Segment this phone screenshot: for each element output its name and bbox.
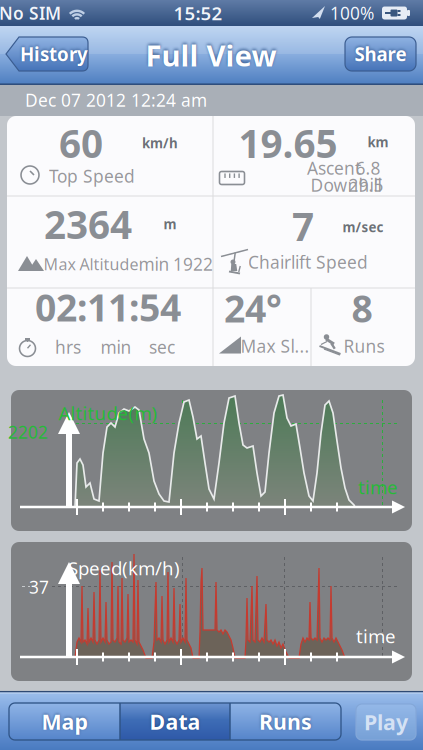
staticText: Speed(km/h) <box>68 556 180 580</box>
staticText: Runs <box>343 334 384 357</box>
button[interactable]: Play <box>356 704 416 740</box>
staticText: Map <box>41 707 87 736</box>
staticText: m <box>163 215 176 233</box>
staticText: 19.65 <box>238 117 337 169</box>
staticText: 15:52 <box>173 1 222 25</box>
staticText: sec <box>149 335 175 358</box>
button[interactable]: Map <box>9 703 119 740</box>
staticText: 6.8 <box>355 156 380 179</box>
staticText: time <box>356 624 396 648</box>
staticText: Full View <box>145 35 276 74</box>
staticText: Chairlift Speed <box>248 250 368 273</box>
staticText: Runs <box>259 707 312 736</box>
staticText: 2364 <box>44 198 132 250</box>
staticText: History <box>20 42 88 66</box>
staticText: km <box>367 133 388 151</box>
staticText: hrs <box>55 335 81 358</box>
button[interactable]: History <box>6 37 88 71</box>
staticText: min <box>138 252 169 275</box>
staticText: Max Sl... <box>240 334 309 357</box>
staticText: No SIM <box>0 1 61 24</box>
staticText: 24° <box>224 283 282 333</box>
staticText: Dec 07 2012 12:24 am <box>25 88 207 111</box>
staticText: 8 <box>351 283 372 333</box>
button[interactable]: Runs <box>230 703 340 740</box>
staticText: Ascent <box>307 156 361 179</box>
staticText: 60 <box>59 117 103 169</box>
staticText: 37 <box>29 575 49 598</box>
staticText: time <box>358 475 398 499</box>
staticText: 2202 <box>8 420 48 443</box>
staticText: Data <box>149 707 200 736</box>
staticText: Downhill <box>310 173 381 196</box>
staticText: km/h <box>142 134 178 152</box>
staticText: Share <box>354 42 406 66</box>
staticText: 1922 <box>173 252 213 275</box>
staticText: Altitude(m) <box>58 401 157 425</box>
staticText: Play <box>364 708 408 736</box>
staticText: 02:11:54 <box>35 282 181 332</box>
staticText: Top Speed <box>49 164 135 187</box>
staticText: Max Altitude <box>43 253 138 275</box>
staticText: min <box>100 335 131 358</box>
button[interactable]: Data <box>120 703 230 740</box>
staticText: 29.5 <box>348 173 383 196</box>
staticText: 100% <box>330 1 374 24</box>
button[interactable]: Share <box>345 37 416 71</box>
staticText: 7 <box>292 200 314 252</box>
staticText: m/sec <box>342 218 383 236</box>
